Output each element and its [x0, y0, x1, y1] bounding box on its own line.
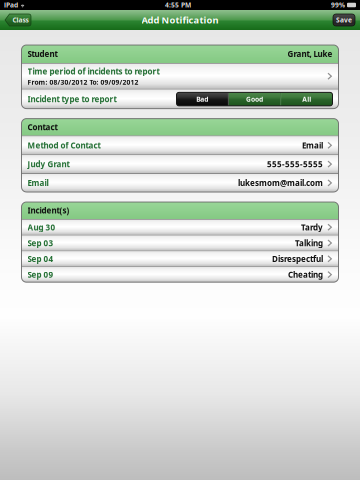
- staticText: Grant, Luke: [287, 49, 332, 59]
- staticText: Sep 09: [27, 269, 53, 280]
- staticText: 555-555-5555: [267, 159, 323, 169]
- staticText: Sep 03: [27, 238, 53, 248]
- staticText: 4:55 PM: [165, 1, 191, 9]
- button[interactable]: Save: [333, 14, 355, 26]
- button[interactable]: Method of Contact: [21, 136, 338, 154]
- staticText: Class: [12, 16, 28, 24]
- button[interactable]: Time period of incidents to report: [21, 64, 338, 89]
- staticText: Sep 04: [27, 254, 53, 264]
- staticText: Aug 30: [27, 222, 55, 233]
- staticText: Good: [246, 95, 263, 104]
- button[interactable]: Sep 03: [21, 236, 338, 251]
- staticText: Bad: [196, 95, 208, 104]
- staticText: Tardy: [301, 222, 323, 233]
- staticText: Cheating: [288, 269, 323, 280]
- staticText: iPad: [4, 1, 18, 9]
- staticText: Email: [302, 140, 323, 151]
- button[interactable]: Sep 04: [21, 251, 338, 266]
- button[interactable]: Class: [5, 14, 31, 26]
- staticText: Save: [336, 16, 352, 24]
- staticText: From: 08/30/2012 To: 09/09/2012: [27, 78, 138, 87]
- staticText: All: [302, 95, 311, 104]
- button[interactable]: Aug 30: [21, 220, 338, 235]
- button[interactable]: Sep 09: [21, 267, 338, 282]
- staticText: Talking: [295, 238, 323, 248]
- button[interactable]: Good: [229, 92, 280, 106]
- staticText: Add Notification: [141, 14, 218, 26]
- button[interactable]: Judy Grant: [21, 155, 338, 173]
- staticText: lukesmom@mail.com: [238, 178, 323, 188]
- staticText: Judy Grant: [27, 159, 69, 169]
- button[interactable]: Email: [21, 174, 338, 192]
- staticText: Email: [27, 178, 48, 188]
- staticText: Method of Contact: [27, 140, 100, 151]
- staticText: Time period of incidents to report: [27, 66, 159, 77]
- staticText: 99%: [331, 1, 345, 9]
- staticText: Student: [27, 49, 57, 59]
- staticText: Incident(s): [27, 205, 69, 216]
- button[interactable]: All: [281, 92, 332, 106]
- button[interactable]: Bad: [176, 92, 228, 106]
- staticText: Contact: [27, 122, 57, 132]
- staticText: Disrespectful: [272, 254, 323, 264]
- staticText: Incident type to report: [27, 94, 116, 104]
